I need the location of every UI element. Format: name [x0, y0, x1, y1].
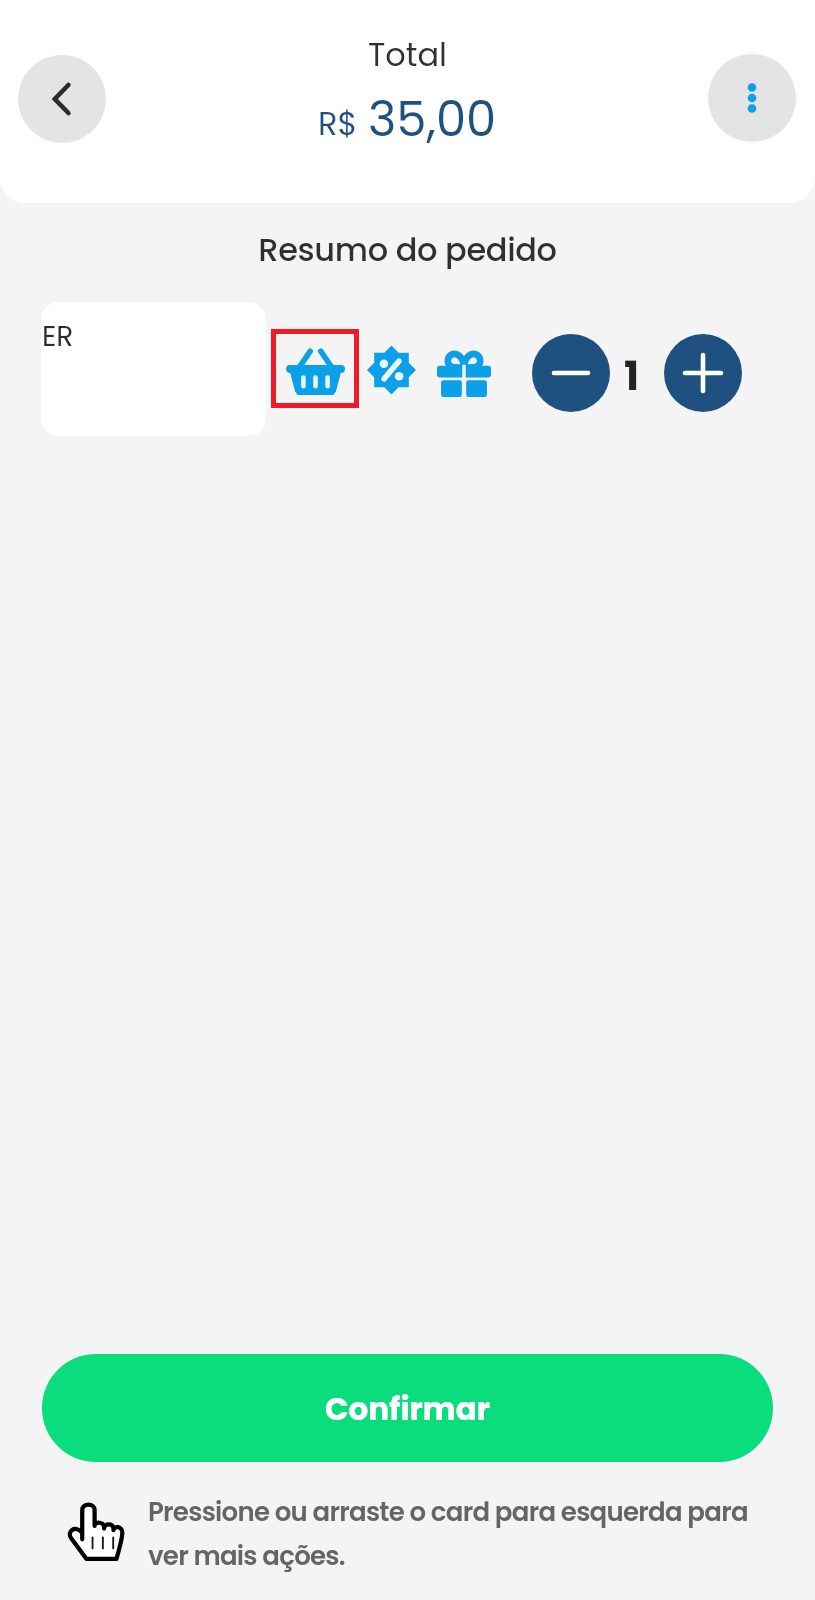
staticText: ER [42, 317, 74, 356]
staticText: R$ [318, 101, 358, 146]
button[interactable]: Adicionar ao carrinho [271, 329, 359, 408]
button[interactable]: Mais opcoes [708, 54, 796, 142]
staticText: 35,00 [368, 86, 497, 153]
button[interactable]: Aumentar quantidade [664, 334, 742, 412]
staticText: 1 [624, 348, 640, 404]
button[interactable]: ER [41, 302, 266, 436]
button[interactable]: Diminuir quantidade [532, 334, 610, 412]
staticText: Confirmar [325, 1387, 490, 1430]
button[interactable]: Brinde [437, 346, 491, 396]
staticText: Total [0, 32, 815, 77]
button[interactable]: Confirmar [42, 1354, 773, 1462]
button[interactable]: Voltar [18, 55, 106, 143]
staticText: Pressione ou arraste o card para esquerd… [148, 1494, 748, 1574]
staticText: Resumo do pedido [0, 227, 815, 272]
button[interactable]: Desconto [366, 344, 416, 395]
